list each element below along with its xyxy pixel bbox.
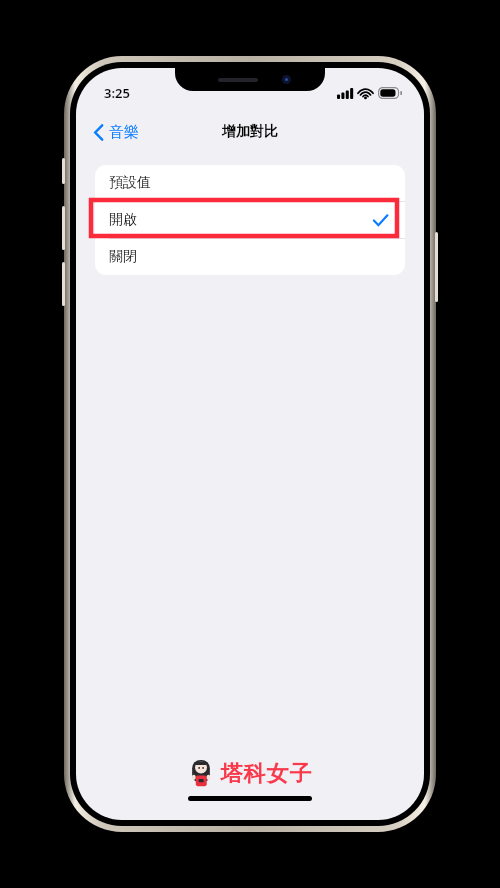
staticText: 開啟 [109,211,137,229]
staticText: 音樂 [109,123,139,142]
button[interactable]: 預設值 [95,165,405,201]
button[interactable]: 關閉 [95,239,405,275]
button[interactable]: 音樂 [88,119,145,146]
staticText: 塔科女子 [220,760,312,788]
button[interactable]: 開啟 [95,202,405,238]
other: Cellular signal [337,88,353,99]
other: 塔科女子 logo [188,758,214,790]
staticText: 關閉 [109,248,137,266]
staticText: 3:25 [104,84,130,102]
staticText: 預設值 [109,174,151,192]
other: Battery [378,87,402,99]
staticText: 增加對比 [222,123,278,141]
other: Wi-Fi [358,88,373,99]
